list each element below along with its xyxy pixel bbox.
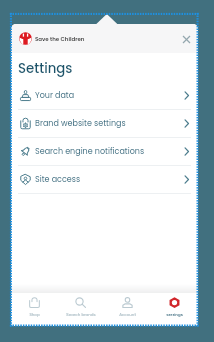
staticText: Settings [18,59,73,78]
button[interactable]: Your data [11,82,198,109]
button[interactable]: Brand website settings [11,110,198,137]
button[interactable]: Account [104,297,151,318]
button[interactable]: Search brands [57,297,104,318]
staticText: Search engine notifications [35,146,145,157]
staticText: Search brands [66,312,96,318]
staticText: Account [119,312,136,318]
staticText: Shop [29,312,40,318]
staticText: Site access [35,174,81,185]
button[interactable]: Settings [151,297,198,318]
staticText: Settings [166,312,183,318]
button[interactable]: Search engine notifications [11,138,198,165]
staticText: Save the Children [35,35,85,43]
staticText: Brand website settings [35,118,126,129]
button[interactable]: Shop [11,297,57,318]
staticText: Your data [35,90,75,101]
button[interactable]: Site access [11,166,198,193]
button[interactable]: Close [176,29,196,49]
